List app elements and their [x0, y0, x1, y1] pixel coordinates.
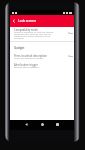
staticText: Alert button trigger [14, 63, 38, 67]
staticText: together with phones that do not [14, 32, 52, 35]
staticText: Compatibility mode [14, 28, 38, 32]
button[interactable] [10, 52, 74, 60]
button[interactable]: Toggle [67, 30, 73, 36]
button[interactable]: Home [37, 119, 47, 129]
button[interactable] [10, 62, 74, 70]
staticText: Choose what happens [14, 65, 39, 68]
staticText: Press to unlock description [14, 54, 47, 58]
staticText: Gadget [14, 46, 25, 50]
button[interactable]: Back [21, 119, 31, 129]
staticText: support the latest version of the [14, 34, 51, 37]
button[interactable]: Navigate up [10, 15, 18, 27]
button[interactable] [10, 27, 74, 41]
staticText: Makes it possible to use this device [14, 30, 54, 33]
staticText: Press the button to unlock [14, 56, 44, 59]
staticText: Lock screen [18, 19, 36, 23]
button[interactable]: Toggle [67, 53, 73, 59]
staticText: protocol. [14, 36, 25, 39]
button[interactable]: Recents [52, 119, 62, 129]
